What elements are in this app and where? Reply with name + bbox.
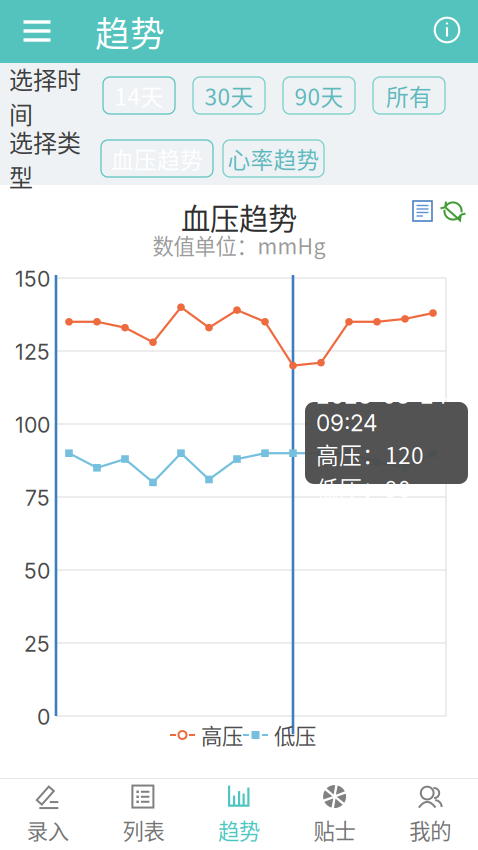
staticText: 90天 xyxy=(294,79,343,112)
staticText: 选择类型 xyxy=(9,124,81,194)
staticText: 30天 xyxy=(204,79,253,112)
staticText: 列表 xyxy=(122,815,164,845)
button[interactable]: Refresh xyxy=(441,199,465,223)
button[interactable]: 趋势 xyxy=(191,769,287,850)
staticText: 2023-08-24 09:24 xyxy=(316,382,448,437)
staticText: 125 xyxy=(15,339,50,365)
staticText: 贴士 xyxy=(314,815,356,845)
button[interactable]: 我的 xyxy=(382,769,478,850)
staticText: 14天 xyxy=(114,79,163,112)
button[interactable]: Records xyxy=(412,200,433,222)
button[interactable]: Info xyxy=(433,16,463,46)
staticText: 高压：120 xyxy=(316,438,424,470)
button[interactable]: 所有 xyxy=(373,77,445,114)
staticText: 趋势 xyxy=(95,7,165,57)
staticText: 趋势 xyxy=(218,815,260,845)
staticText: 录入 xyxy=(27,815,69,845)
staticText: 150 xyxy=(15,266,50,292)
staticText: 血压趋势 xyxy=(111,142,203,175)
staticText: 低压：90 xyxy=(316,471,411,504)
button[interactable]: 14天 xyxy=(103,77,175,114)
button[interactable]: 列表 xyxy=(96,769,191,850)
button[interactable]: 血压趋势 xyxy=(101,140,213,177)
staticText: 数值单位：mmHg xyxy=(152,230,325,260)
button[interactable]: 90天 xyxy=(283,77,355,114)
staticText: 心率趋势 xyxy=(227,142,319,175)
staticText: 我的 xyxy=(409,815,451,845)
staticText: 100 xyxy=(15,412,50,438)
button[interactable]: 30天 xyxy=(193,77,265,114)
staticText: 50 xyxy=(24,558,50,584)
button[interactable]: 贴士 xyxy=(287,769,382,850)
staticText: 25 xyxy=(24,631,50,657)
staticText: 高压 xyxy=(201,720,243,750)
staticText: 75 xyxy=(25,485,50,511)
staticText: 0 xyxy=(37,704,50,730)
button[interactable]: Menu xyxy=(23,20,51,42)
staticText: 选择时间 xyxy=(9,61,81,131)
staticText: 低压 xyxy=(274,720,316,750)
button[interactable]: 心率趋势 xyxy=(223,140,324,177)
button[interactable]: 录入 xyxy=(0,769,96,850)
staticText: 血压趋势 xyxy=(181,196,297,238)
staticText: 所有 xyxy=(386,79,432,112)
